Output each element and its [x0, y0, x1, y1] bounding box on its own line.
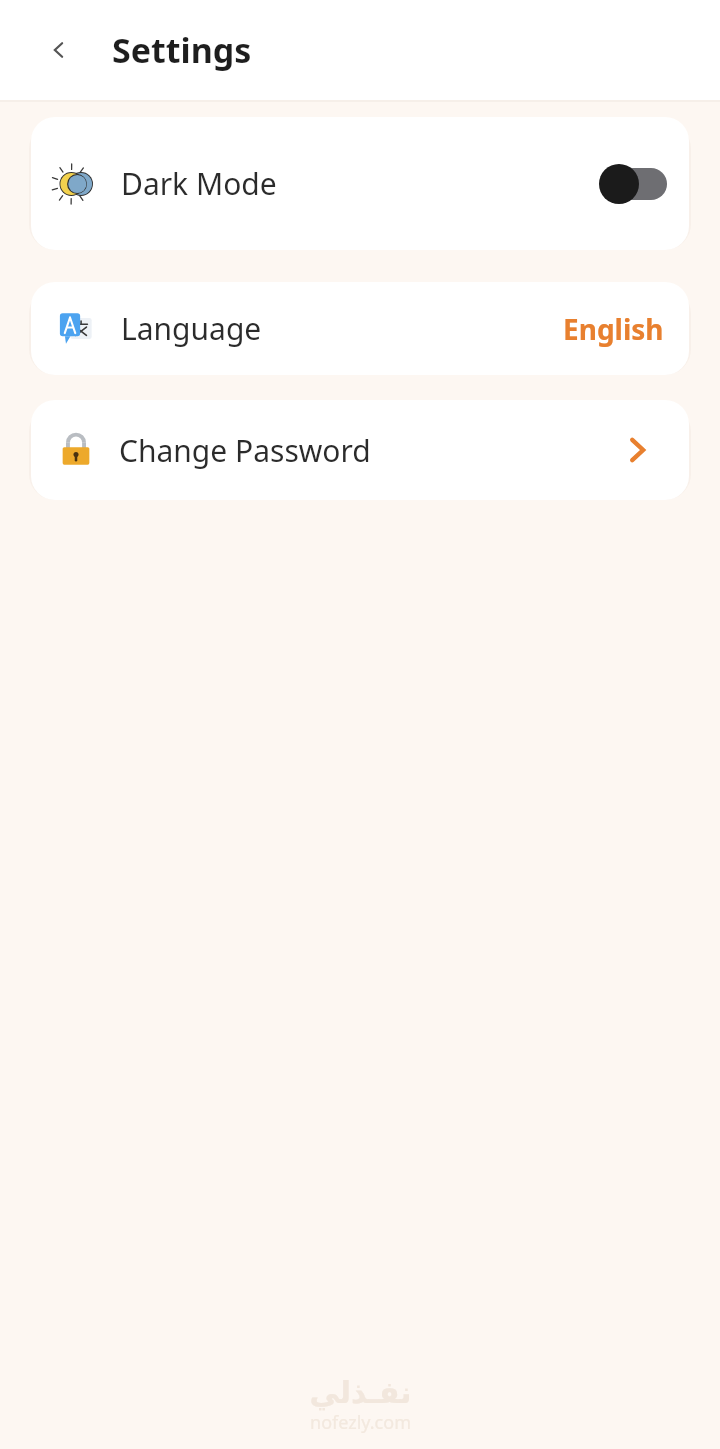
button[interactable]: Dark Mode — [31, 117, 689, 250]
staticText: nofezly.com — [310, 1410, 411, 1435]
staticText: Dark Mode — [121, 163, 277, 204]
staticText: Change Password — [119, 430, 371, 471]
staticText: English — [563, 310, 664, 348]
button[interactable]: Open change password — [615, 428, 659, 472]
staticText: Language — [121, 308, 262, 349]
button[interactable]: Back — [36, 27, 82, 73]
button[interactable]: Change Password — [31, 400, 689, 500]
staticText: نفـذلي — [309, 1375, 412, 1410]
button[interactable]: Language — [31, 282, 689, 375]
staticText: Settings — [112, 27, 252, 73]
button[interactable]: Dark Mode toggle — [599, 164, 667, 204]
